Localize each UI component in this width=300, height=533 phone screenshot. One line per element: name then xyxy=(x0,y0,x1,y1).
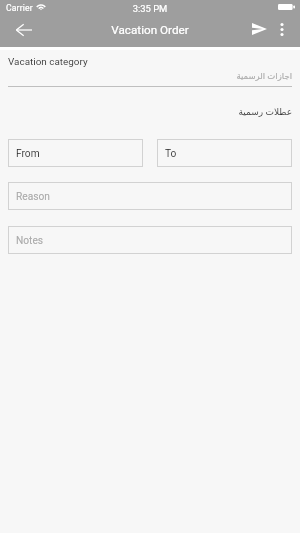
button[interactable]: More options xyxy=(273,16,291,42)
staticText: Notes xyxy=(16,235,44,247)
staticText: To xyxy=(165,148,177,160)
button[interactable]: Back xyxy=(10,17,38,43)
button[interactable]: اجازات الرسمية xyxy=(8,71,292,87)
staticText: Reason xyxy=(16,191,50,203)
button[interactable]: Send xyxy=(245,16,273,42)
staticText: Vacation Order xyxy=(0,23,300,37)
staticText: عطلات رسمية xyxy=(8,107,292,118)
button[interactable]: Reason xyxy=(8,182,292,210)
button[interactable]: From xyxy=(8,139,143,167)
staticText: Vacation category xyxy=(8,56,88,68)
button[interactable]: Notes xyxy=(8,226,292,254)
button[interactable]: To xyxy=(157,139,292,167)
staticText: اجازات الرسمية xyxy=(8,71,292,81)
staticText: Carrier xyxy=(6,3,33,13)
staticText: 3:35 PM xyxy=(0,3,300,14)
staticText: From xyxy=(16,148,40,160)
